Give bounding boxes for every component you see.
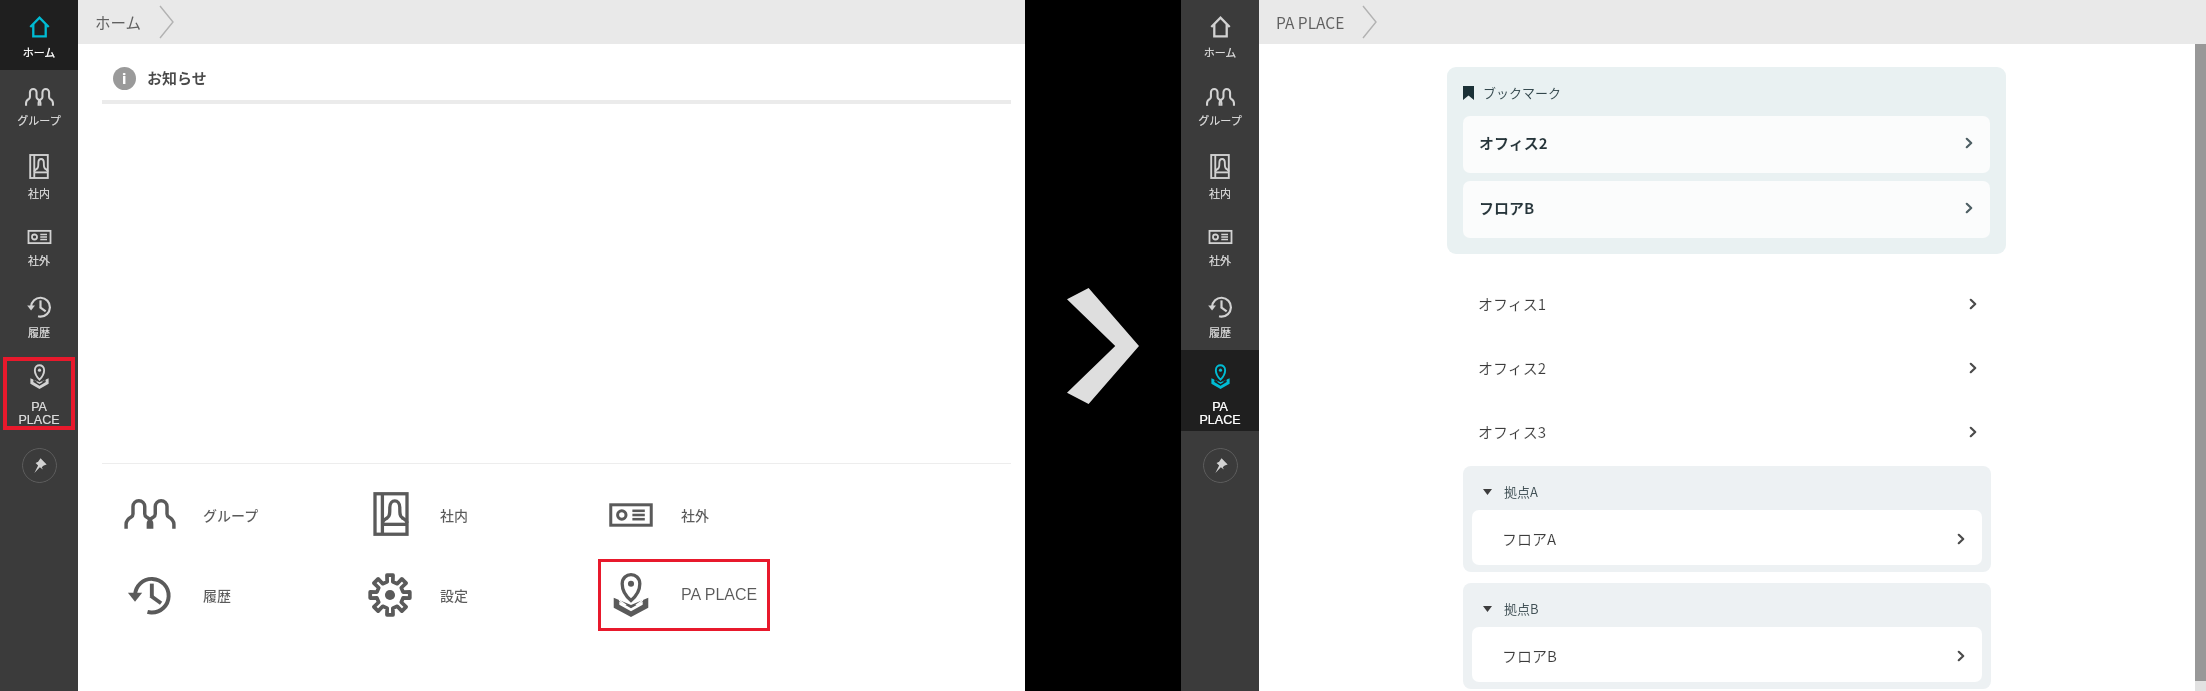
button[interactable] xyxy=(598,559,770,631)
button[interactable]: 社内 xyxy=(1181,140,1259,210)
staticText: PA PLACE xyxy=(1183,400,1257,426)
staticText: 社内 xyxy=(1183,185,1257,201)
staticText: ホーム xyxy=(2,44,76,60)
button[interactable]: PA PLACE xyxy=(0,350,78,431)
button[interactable]: PA PLACE xyxy=(1181,350,1259,431)
button[interactable]: ホーム xyxy=(0,0,78,70)
staticText: 履歴 xyxy=(2,324,76,340)
staticText: グループ xyxy=(1183,112,1257,128)
staticText: グループ xyxy=(2,112,76,128)
staticText: フロアA xyxy=(1502,528,1557,550)
staticText: 履歴 xyxy=(203,585,231,605)
button[interactable]: オフィス1 xyxy=(1447,270,2006,334)
staticText: 社外 xyxy=(2,252,76,268)
button[interactable]: グループ xyxy=(0,70,78,140)
staticText: ホーム xyxy=(95,11,142,33)
staticText: 社外 xyxy=(681,505,709,525)
button[interactable]: ホーム xyxy=(1181,0,1259,70)
staticText: 設定 xyxy=(440,585,468,605)
button[interactable]: グループ xyxy=(1181,70,1259,140)
staticText: フロアB xyxy=(1502,645,1557,667)
button[interactable]: フロアB xyxy=(1472,627,1982,682)
button[interactable]: 社外 xyxy=(1181,210,1259,280)
button[interactable]: オフィス2 xyxy=(1447,334,2006,398)
staticText: 社内 xyxy=(440,505,468,525)
button[interactable]: 履歴 xyxy=(1181,280,1259,350)
button[interactable]: Pin xyxy=(22,448,57,483)
button[interactable]: 履歴 xyxy=(0,280,78,350)
button[interactable]: フロアA xyxy=(1472,510,1982,565)
staticText: PA PLACE xyxy=(1276,11,1345,33)
button[interactable]: フロアB xyxy=(1463,181,1990,238)
button[interactable]: オフィス3 xyxy=(1447,398,2006,462)
staticText: オフィス1 xyxy=(1478,293,1547,315)
staticText: 社内 xyxy=(2,185,76,201)
button[interactable]: 拠点B xyxy=(1472,599,1982,618)
staticText: 社外 xyxy=(1183,252,1257,268)
staticText: ブックマーク xyxy=(1483,83,1562,102)
button[interactable]: オフィス2 xyxy=(1463,116,1990,173)
staticText: PA PLACE xyxy=(2,400,76,426)
staticText: お知らせ xyxy=(147,67,207,89)
staticText: フロアB xyxy=(1479,197,1535,219)
button[interactable]: Pin xyxy=(1203,448,1238,483)
button[interactable]: 拠点A xyxy=(1472,482,1982,501)
staticText: PA PLACE xyxy=(681,586,758,604)
button[interactable]: 社内 xyxy=(0,140,78,210)
staticText: i xyxy=(122,69,127,88)
button[interactable]: 社外 xyxy=(0,210,78,280)
staticText: オフィス3 xyxy=(1478,421,1547,443)
staticText: 拠点A xyxy=(1504,482,1538,501)
staticText: グループ xyxy=(203,505,259,525)
staticText: ホーム xyxy=(1183,44,1257,60)
staticText: 履歴 xyxy=(1183,324,1257,340)
staticText: オフィス2 xyxy=(1478,357,1547,379)
staticText: オフィス2 xyxy=(1479,132,1548,154)
staticText: 拠点B xyxy=(1504,599,1539,618)
